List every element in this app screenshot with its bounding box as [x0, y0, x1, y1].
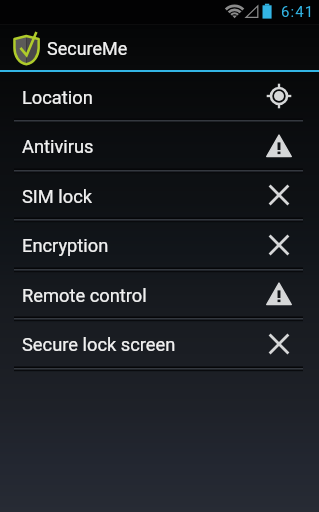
staticText: SIM lock: [22, 186, 93, 207]
button[interactable]: Secure lock screen: [0, 319, 319, 368]
staticText: Secure lock screen: [22, 334, 176, 355]
button[interactable]: SecureMe: [0, 25, 319, 70]
staticText: 6:41: [281, 3, 315, 21]
button[interactable]: Location: [0, 72, 319, 120]
staticText: Antivirus: [22, 136, 94, 157]
button[interactable]: SIM lock: [0, 171, 319, 219]
staticText: SecureMe: [47, 38, 128, 59]
button[interactable]: Remote control: [0, 270, 319, 318]
button[interactable]: Antivirus: [0, 121, 319, 170]
button[interactable]: Encryption: [0, 220, 319, 269]
staticText: Encryption: [22, 235, 109, 256]
staticText: Location: [22, 87, 93, 108]
staticText: Remote control: [22, 285, 147, 306]
